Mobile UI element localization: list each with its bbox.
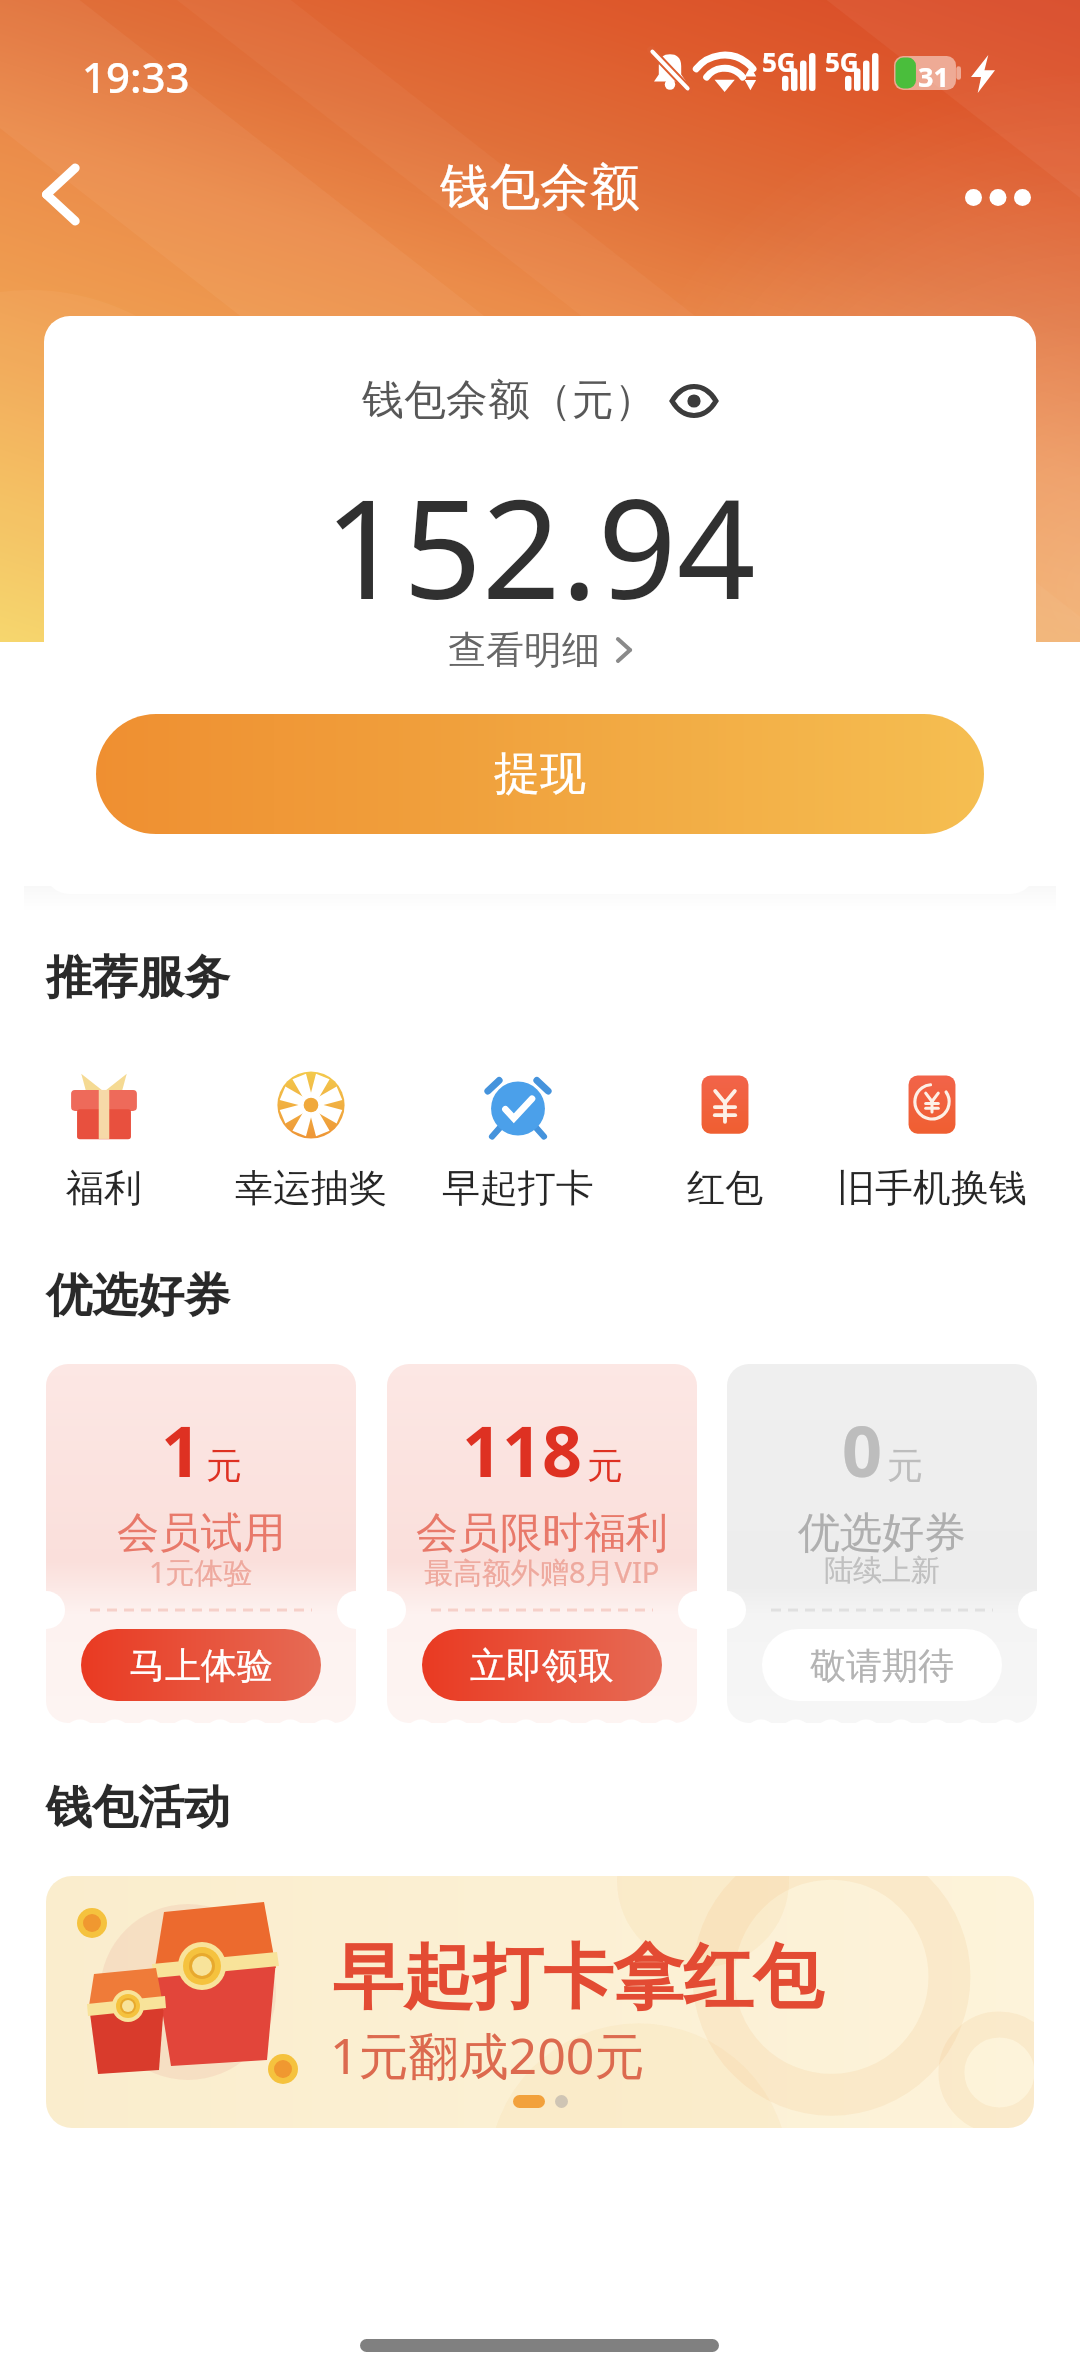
staticText: 早起打卡拿红包 (333, 1934, 823, 2022)
staticText: 优选好券 (46, 1267, 230, 1325)
button[interactable]: 早起打卡拿红包 (46, 1876, 1034, 2128)
button[interactable]: Back (14, 140, 106, 250)
button[interactable]: 马上体验 (81, 1629, 321, 1701)
button[interactable]: Toggle balance visibility (670, 377, 718, 425)
button[interactable]: 118 (387, 1364, 697, 1723)
button[interactable]: 敬请期待 (762, 1629, 1002, 1701)
staticText: 推荐服务 (46, 949, 230, 1007)
staticText: 最高额外赠8月VIP (424, 1552, 660, 1592)
button[interactable]: 立即领取 (422, 1629, 662, 1701)
button[interactable]: 提现 (96, 714, 984, 834)
staticText: 1元翻成200元 (330, 2021, 645, 2089)
staticText: 福利 (66, 1164, 142, 1212)
staticText: 陆续上新 (824, 1552, 940, 1589)
button[interactable]: 福利 (1, 1066, 207, 1212)
staticText: 立即领取 (470, 1643, 614, 1688)
staticText: 会员限时福利 (416, 1507, 668, 1560)
staticText: 旧手机换钱 (837, 1164, 1027, 1212)
staticText: 0 (842, 1402, 883, 1497)
button[interactable]: 0 (727, 1364, 1037, 1723)
staticText: 会员试用 (117, 1507, 285, 1560)
staticText: 31 (918, 58, 949, 95)
staticText: 钱包余额（元） (362, 374, 656, 427)
button[interactable]: 早起打卡 (415, 1066, 621, 1212)
staticText: 5G (825, 44, 859, 79)
staticText: 元 (887, 1443, 923, 1488)
staticText: 红包 (687, 1164, 763, 1212)
staticText: 1元体验 (149, 1552, 253, 1592)
staticText: 152.94 (324, 451, 756, 639)
staticText: 优选好券 (798, 1507, 966, 1560)
staticText: 早起打卡 (442, 1164, 594, 1212)
staticText: 元 (587, 1443, 623, 1488)
staticText: 马上体验 (129, 1643, 273, 1688)
button[interactable]: 红包 (622, 1066, 828, 1212)
button[interactable]: 1 (46, 1364, 356, 1723)
staticText: 19:33 (82, 48, 190, 105)
staticText: 提现 (494, 745, 586, 803)
staticText: 敬请期待 (810, 1643, 954, 1688)
staticText: 118 (462, 1402, 583, 1497)
staticText: 钱包活动 (46, 1779, 230, 1837)
button[interactable]: 旧手机换钱 (829, 1066, 1035, 1212)
staticText: 幸运抽奖 (235, 1164, 387, 1212)
staticText: 元 (206, 1443, 242, 1488)
staticText: 查看明细 (448, 626, 600, 674)
button[interactable]: 幸运抽奖 (208, 1066, 414, 1212)
button[interactable]: 查看明细 (448, 626, 632, 674)
button[interactable]: More options (942, 140, 1054, 250)
staticText: 5G (762, 44, 796, 79)
staticText: 钱包余额 (440, 156, 640, 219)
staticText: 1 (161, 1402, 202, 1497)
